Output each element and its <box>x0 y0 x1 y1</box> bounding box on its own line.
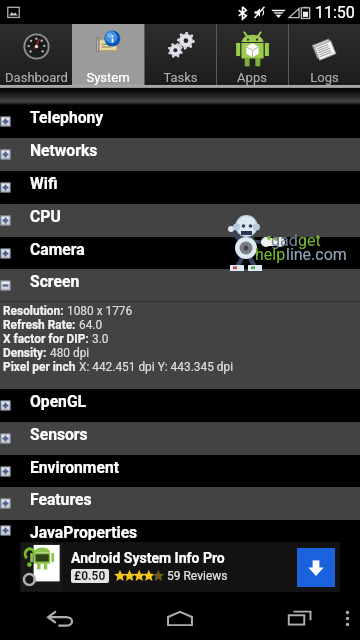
staticText: gad <box>271 231 298 250</box>
button[interactable]: Android System Info Pro <box>20 542 340 592</box>
button[interactable]: Features <box>0 487 360 520</box>
staticText: get <box>298 231 321 250</box>
staticText: 59 Reviews <box>167 569 228 583</box>
button[interactable]: Home <box>120 596 240 640</box>
staticText: Screen <box>30 272 80 290</box>
button[interactable]: Camera <box>0 237 360 269</box>
staticText: X: 442.451 dpi Y: 443.345 dpi <box>76 360 234 374</box>
staticText: X factor for DIP: <box>3 332 89 346</box>
staticText: 1080 x 1776 <box>64 304 133 318</box>
staticText: Logs <box>310 70 339 85</box>
other: Screenshot <box>7 6 20 19</box>
button[interactable]: Install <box>297 548 335 587</box>
button[interactable]: System <box>72 24 144 85</box>
staticText: Pixel per inch <box>3 360 76 374</box>
button[interactable]: Recent apps <box>240 596 360 640</box>
staticText: CPU <box>30 207 61 225</box>
button[interactable]: Logs <box>288 24 360 85</box>
staticText: OpenGL <box>30 392 87 410</box>
staticText: Tasks <box>163 70 198 85</box>
staticText: Dashboard <box>5 70 68 85</box>
button[interactable]: Wifi <box>0 171 360 204</box>
staticText: 480 dpi <box>47 346 90 360</box>
button[interactable]: OpenGL <box>0 389 360 422</box>
staticText: Resolution: <box>3 304 64 318</box>
staticText: Sensors <box>30 425 88 443</box>
staticText: Environment <box>30 458 120 476</box>
button[interactable]: Sensors <box>0 422 360 455</box>
staticText: help <box>255 245 286 264</box>
staticText: Wifi <box>30 174 58 192</box>
staticText: JavaProperties <box>30 523 138 541</box>
button[interactable]: CPU <box>0 204 360 237</box>
button[interactable]: Environment <box>0 455 360 487</box>
staticText: Refresh Rate: <box>3 318 76 332</box>
staticText: Apps <box>237 70 267 85</box>
button[interactable]: Apps <box>216 24 288 85</box>
button[interactable]: Dashboard <box>0 24 72 85</box>
button[interactable]: Telephony <box>0 105 360 138</box>
staticText: 64.0 <box>76 318 103 332</box>
staticText: £0.50 <box>74 569 106 583</box>
staticText: Density: <box>3 346 47 360</box>
staticText: Android System Info Pro <box>71 550 225 566</box>
button[interactable]: More options <box>334 596 360 640</box>
staticText: System <box>86 70 130 85</box>
staticText: line.com <box>286 245 347 264</box>
button[interactable]: Networks <box>0 138 360 171</box>
button[interactable]: Screen <box>0 269 360 301</box>
staticText: 3.0 <box>89 332 109 346</box>
staticText: Camera <box>30 240 85 258</box>
button[interactable]: Back <box>0 596 120 640</box>
staticText: 11:50 <box>315 3 355 22</box>
button[interactable]: JavaProperties <box>0 520 360 540</box>
staticText: Features <box>30 490 92 508</box>
staticText: Telephony <box>30 108 104 126</box>
staticText: Networks <box>30 141 98 159</box>
button[interactable]: Tasks <box>144 24 216 85</box>
